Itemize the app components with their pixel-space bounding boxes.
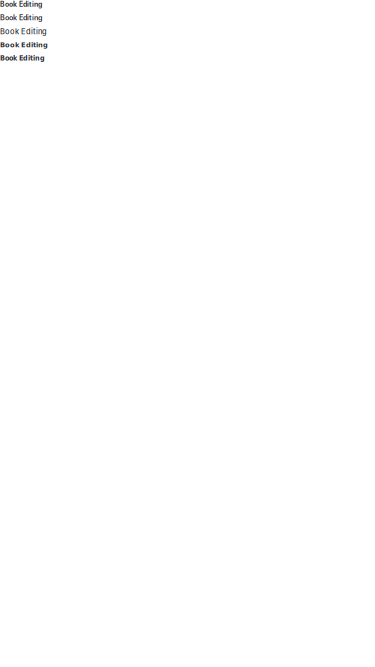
staticText: Book Editing <box>0 0 42 8</box>
staticText: Book Editing <box>0 27 47 36</box>
staticText: Book Editing <box>0 41 48 49</box>
staticText: Book Editing <box>0 54 45 62</box>
staticText: Book Editing <box>0 13 43 22</box>
